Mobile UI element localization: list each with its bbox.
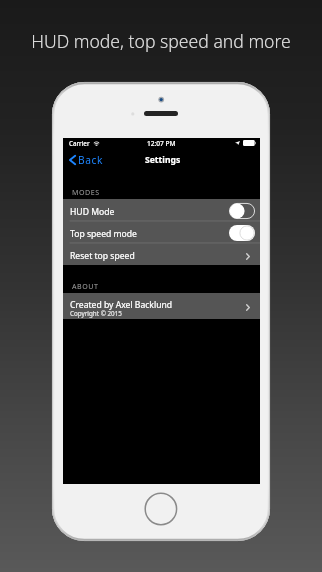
button[interactable]: Reset top speed xyxy=(63,243,260,265)
staticText: Settings xyxy=(145,154,181,166)
staticText: Copyright © 2015 xyxy=(70,309,122,318)
staticText: Created by Axel Backlund xyxy=(70,299,173,311)
button[interactable]: Toggle on xyxy=(229,225,255,241)
staticText: Carrier xyxy=(69,139,90,147)
staticText: HUD Mode xyxy=(70,206,115,218)
button[interactable]: Home xyxy=(142,490,180,528)
staticText: Top speed mode xyxy=(70,228,137,240)
staticText: Back xyxy=(78,153,103,167)
staticText: MODES xyxy=(72,187,100,197)
button[interactable]: HUD Mode xyxy=(63,199,260,221)
staticText: HUD mode, top speed and more xyxy=(31,29,291,53)
button[interactable]: Top speed mode xyxy=(63,221,260,243)
button[interactable]: Created by Axel Backlund xyxy=(63,293,260,319)
staticText: Reset top speed xyxy=(70,250,135,262)
button[interactable]: Back xyxy=(63,149,109,171)
staticText: 12:07 PM xyxy=(147,139,176,148)
staticText: ABOUT xyxy=(72,281,99,291)
button[interactable]: Toggle off xyxy=(229,203,255,219)
